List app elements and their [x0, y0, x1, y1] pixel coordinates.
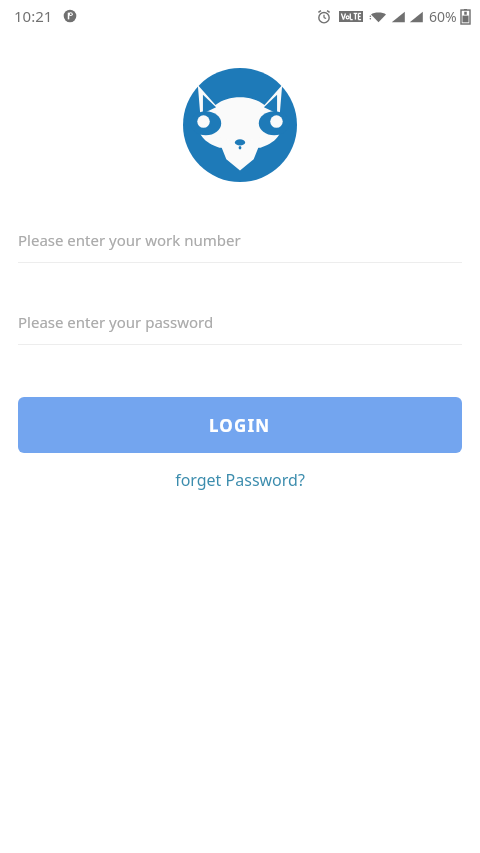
staticText: Please enter your password — [18, 312, 214, 332]
staticText: forget Password? — [175, 469, 305, 491]
button[interactable]: Please enter your work number — [18, 227, 462, 253]
button[interactable]: Please enter your password — [18, 309, 462, 335]
staticText: Please enter your work number — [18, 230, 241, 250]
button[interactable]: forget Password? — [163, 465, 317, 495]
staticText: 10:21 — [14, 6, 53, 26]
button[interactable]: LOGIN — [18, 397, 462, 453]
staticText: LOGIN — [209, 414, 271, 437]
staticText: 60% — [429, 7, 457, 26]
